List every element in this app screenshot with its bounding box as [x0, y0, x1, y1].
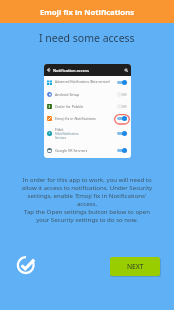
- staticText: Emoji fix in Notifications: [55, 116, 96, 121]
- button[interactable]: Fitbit: [44, 124, 131, 143]
- button[interactable]: Android Setup: [44, 88, 131, 100]
- staticText: Google VR Services: [55, 148, 88, 153]
- button[interactable]: Done: [16, 254, 37, 275]
- staticText: I need some access: [39, 31, 135, 45]
- staticText: Dialer for Pebble: [55, 104, 84, 109]
- staticText: Android Setup: [55, 92, 80, 97]
- staticText: Fitbit Notification Services: [55, 132, 79, 140]
- button[interactable]: Google VR Services: [44, 143, 131, 158]
- staticText: In order for this app to work, you will …: [19, 175, 155, 223]
- button[interactable]: NEXT: [110, 257, 160, 276]
- staticText: Fitbit: [55, 127, 64, 132]
- staticText: NEXT: [127, 262, 144, 271]
- button[interactable]: Dialer for Pebble: [44, 100, 131, 112]
- staticText: Emoji fix in Notifications: [40, 7, 135, 17]
- button[interactable]: Advanced Notifications (Beta version): [44, 76, 131, 88]
- staticText: Notification access: [53, 68, 89, 73]
- button[interactable]: Emoji fix in Notifications: [44, 112, 131, 124]
- staticText: Advanced Notifications (Beta version): [55, 80, 110, 84]
